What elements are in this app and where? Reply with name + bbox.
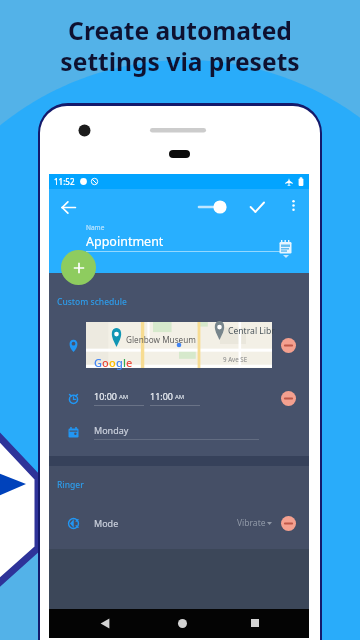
staticText: Vibrate	[237, 517, 266, 529]
staticText: Monday	[94, 424, 129, 436]
staticText: Appointment	[86, 233, 164, 250]
staticText: 11:52	[54, 176, 75, 187]
button[interactable]: Back	[95, 613, 115, 633]
staticText: g	[116, 355, 123, 370]
staticText: Central Libr	[228, 325, 275, 337]
staticText: l	[123, 355, 126, 370]
button[interactable]: Remove	[278, 335, 298, 355]
button[interactable]: Remove	[278, 388, 298, 408]
staticText: Create automated settings via presets	[60, 14, 300, 78]
staticText: o	[109, 355, 116, 370]
staticText: Mode	[94, 517, 119, 529]
button[interactable]: Choose icon	[274, 235, 296, 261]
staticText: 11:00	[150, 390, 174, 402]
button[interactable]: More options	[283, 195, 303, 215]
button[interactable]: Monday	[49, 417, 309, 447]
staticText: o	[102, 355, 109, 370]
staticText: e	[126, 355, 133, 370]
button[interactable]: Name	[86, 221, 286, 257]
button[interactable]: Home	[172, 613, 192, 633]
button[interactable]: Glenbow Museum	[49, 315, 309, 375]
staticText: AM	[175, 393, 185, 401]
staticText: Custom schedule	[57, 296, 127, 308]
staticText: Glenbow Museum	[126, 334, 196, 345]
button[interactable]: Mode	[49, 509, 309, 537]
button[interactable]: Remove	[278, 513, 298, 533]
staticText: 10:00	[94, 390, 118, 402]
button[interactable]: Back	[56, 195, 80, 219]
button[interactable]: Recent apps	[245, 613, 265, 633]
staticText: G	[94, 355, 102, 370]
staticText: Name	[86, 223, 105, 232]
button[interactable]: Enable preset	[196, 195, 232, 219]
button[interactable]: Save	[245, 195, 269, 219]
staticText: 9 Ave SE	[223, 355, 248, 363]
staticText: Ringer	[57, 479, 84, 491]
staticText: AM	[119, 393, 129, 401]
button[interactable]: 10:00	[49, 383, 309, 413]
button[interactable]: Add condition	[61, 250, 96, 285]
